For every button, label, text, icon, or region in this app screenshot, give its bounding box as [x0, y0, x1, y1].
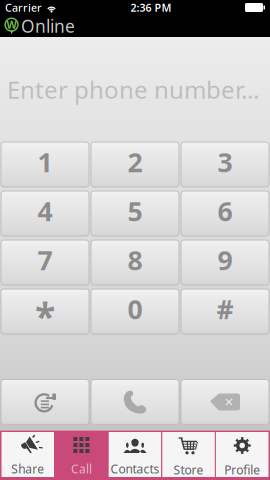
staticText: 1: [37, 144, 52, 180]
staticText: W: [6, 17, 16, 32]
staticText: #: [216, 291, 233, 327]
staticText: 4: [37, 193, 52, 229]
staticText: Online: [21, 14, 75, 37]
button[interactable]: 8: [91, 240, 179, 285]
staticText: Store: [174, 462, 204, 478]
staticText: Share: [11, 461, 44, 477]
button[interactable]: Store: [162, 432, 215, 477]
staticText: *: [35, 291, 55, 341]
staticText: 2:36 PM: [130, 0, 171, 15]
button[interactable]: Profile: [216, 432, 268, 477]
staticText: Call: [71, 461, 92, 477]
staticText: 8: [127, 242, 142, 278]
button[interactable]: 7: [1, 240, 89, 285]
staticText: Carrier: [5, 0, 42, 15]
button[interactable]: 5: [91, 191, 179, 236]
staticText: Profile: [224, 462, 260, 478]
button[interactable]: Call: [55, 432, 108, 477]
button[interactable]: 3: [181, 142, 269, 187]
staticText: Enter phone number...: [7, 74, 259, 105]
button[interactable]: Delete: [181, 379, 269, 424]
button[interactable]: 2: [91, 142, 179, 187]
button[interactable]: Share: [1, 432, 54, 477]
button[interactable]: *: [1, 289, 89, 334]
button[interactable]: 1: [1, 142, 89, 187]
button[interactable]: Contacts: [109, 432, 161, 477]
button[interactable]: Recent calls: [1, 379, 89, 424]
button[interactable]: Call: [91, 379, 179, 424]
staticText: 6: [217, 193, 232, 229]
staticText: 2: [127, 144, 142, 180]
staticText: 7: [37, 242, 52, 278]
button[interactable]: 9: [181, 240, 269, 285]
button[interactable]: #: [181, 289, 269, 334]
staticText: 5: [127, 193, 142, 229]
staticText: Contacts: [110, 461, 159, 477]
button[interactable]: 4: [1, 191, 89, 236]
button[interactable]: 6: [181, 191, 269, 236]
staticText: 9: [217, 242, 232, 278]
button[interactable]: 0: [91, 289, 179, 334]
staticText: 0: [127, 291, 142, 327]
staticText: 3: [217, 144, 232, 180]
